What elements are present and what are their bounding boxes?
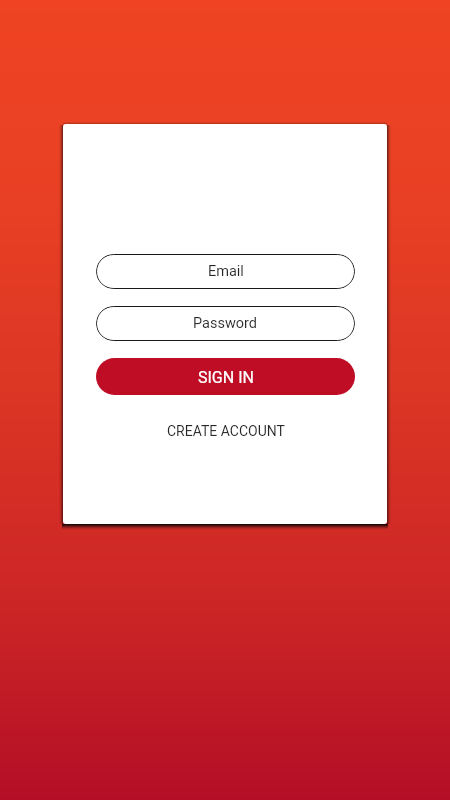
staticText: CREATE ACCOUNT (167, 423, 285, 439)
staticText: Email (208, 263, 244, 280)
staticText: SIGN IN (198, 368, 254, 387)
button[interactable]: Password (96, 306, 355, 341)
button[interactable]: SIGN IN (96, 358, 355, 395)
staticText: Password (193, 315, 258, 332)
button[interactable]: Email (96, 254, 355, 289)
button[interactable]: CREATE ACCOUNT (96, 421, 355, 441)
